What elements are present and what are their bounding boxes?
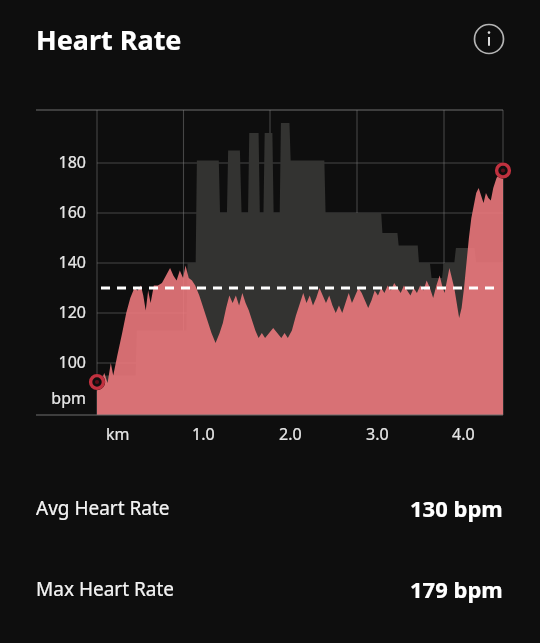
staticText: Avg Heart Rate: [36, 495, 170, 521]
button[interactable]: Max Heart Rate: [0, 568, 540, 610]
staticText: 2.0: [279, 423, 302, 445]
staticText: 130 bpm: [410, 493, 503, 523]
staticText: 1.0: [192, 423, 215, 445]
staticText: 4.0: [452, 423, 475, 445]
staticText: 120: [36, 301, 86, 323]
staticText: 3.0: [366, 423, 389, 445]
staticText: 180: [36, 151, 86, 173]
staticText: 140: [36, 251, 86, 273]
staticText: Heart Rate: [36, 21, 182, 58]
staticText: bpm: [36, 387, 86, 409]
staticText: km: [106, 423, 130, 445]
staticText: Max Heart Rate: [36, 576, 175, 602]
button[interactable]: Info: [472, 22, 506, 56]
button[interactable]: Avg Heart Rate: [0, 487, 540, 529]
staticText: 160: [36, 201, 86, 223]
staticText: 179 bpm: [410, 574, 503, 604]
staticText: 100: [36, 351, 86, 373]
